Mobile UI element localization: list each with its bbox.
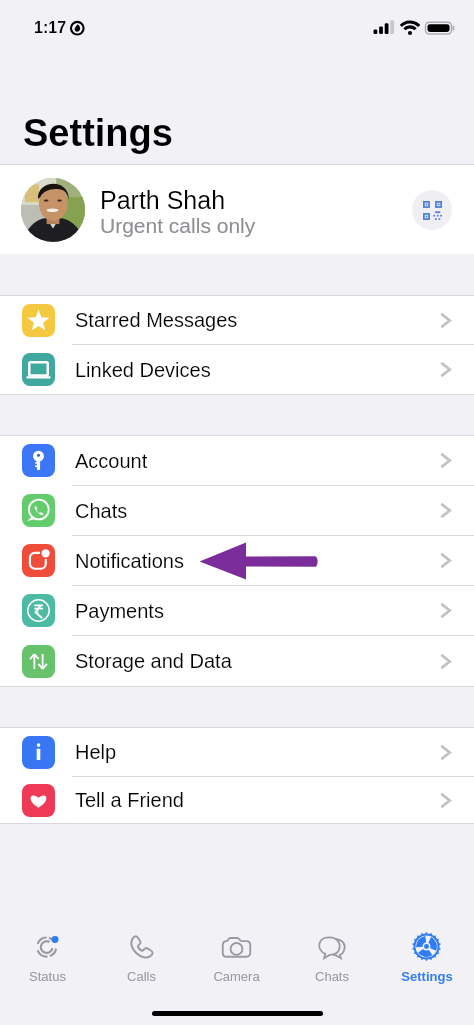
button[interactable]: Tell a Friend — [0, 777, 474, 823]
staticText: Status — [29, 969, 66, 984]
staticText: Account — [75, 450, 148, 472]
staticText: Settings — [23, 112, 173, 154]
button[interactable]: Chats — [284, 919, 379, 984]
staticText: Linked Devices — [75, 359, 211, 381]
button[interactable]: Linked Devices — [0, 345, 474, 394]
staticText: Notifications — [75, 550, 184, 572]
button[interactable]: Starred Messages — [0, 296, 474, 344]
staticText: Storage and Data — [75, 650, 232, 672]
button[interactable]: Notifications — [0, 536, 474, 585]
staticText: Tell a Friend — [75, 789, 184, 811]
staticText: Parth Shah — [100, 186, 226, 214]
button[interactable]: Calls — [94, 919, 189, 984]
button[interactable]: Payments — [0, 586, 474, 635]
button[interactable]: Status — [0, 919, 94, 984]
staticText: Help — [75, 741, 117, 763]
staticText: Calls — [127, 969, 156, 984]
button[interactable]: Parth Shah — [0, 165, 474, 254]
staticText: Chats — [315, 969, 349, 984]
staticText: Payments — [75, 600, 164, 622]
staticText: Camera — [213, 969, 260, 984]
button[interactable]: Camera — [189, 919, 284, 984]
staticText: Starred Messages — [75, 309, 238, 331]
button[interactable]: Account — [0, 436, 474, 485]
button[interactable]: Help — [0, 728, 474, 776]
staticText: Settings — [401, 969, 453, 984]
button[interactable]: Settings — [379, 919, 474, 984]
button[interactable]: Storage and Data — [0, 636, 474, 686]
staticText: Chats — [75, 500, 128, 522]
staticText: 1:17 — [34, 19, 67, 37]
button[interactable]: QR code — [412, 190, 452, 230]
staticText: Urgent calls only — [100, 214, 256, 237]
button[interactable]: Chats — [0, 486, 474, 535]
